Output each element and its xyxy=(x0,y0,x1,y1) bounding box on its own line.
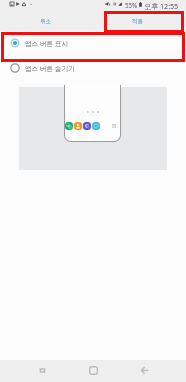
button[interactable]: Recents xyxy=(29,360,55,381)
button[interactable]: 취소 xyxy=(28,11,63,32)
staticText: 앱스 버튼 표시 xyxy=(25,39,68,48)
button[interactable]: Back xyxy=(131,360,157,381)
button[interactable]: Home xyxy=(80,360,106,381)
staticText: 앱스 버튼 숨기기 xyxy=(25,64,75,73)
staticText: 오후 12:55 xyxy=(144,1,179,11)
staticText: 55% xyxy=(125,1,138,9)
button[interactable]: 앱스 버튼 숨기기 xyxy=(0,56,186,80)
staticText: 적용 xyxy=(132,18,144,25)
staticText: 취소 xyxy=(40,18,52,25)
button[interactable]: 적용 xyxy=(120,11,155,32)
button[interactable]: 앱스 버튼 표시 xyxy=(0,31,186,55)
